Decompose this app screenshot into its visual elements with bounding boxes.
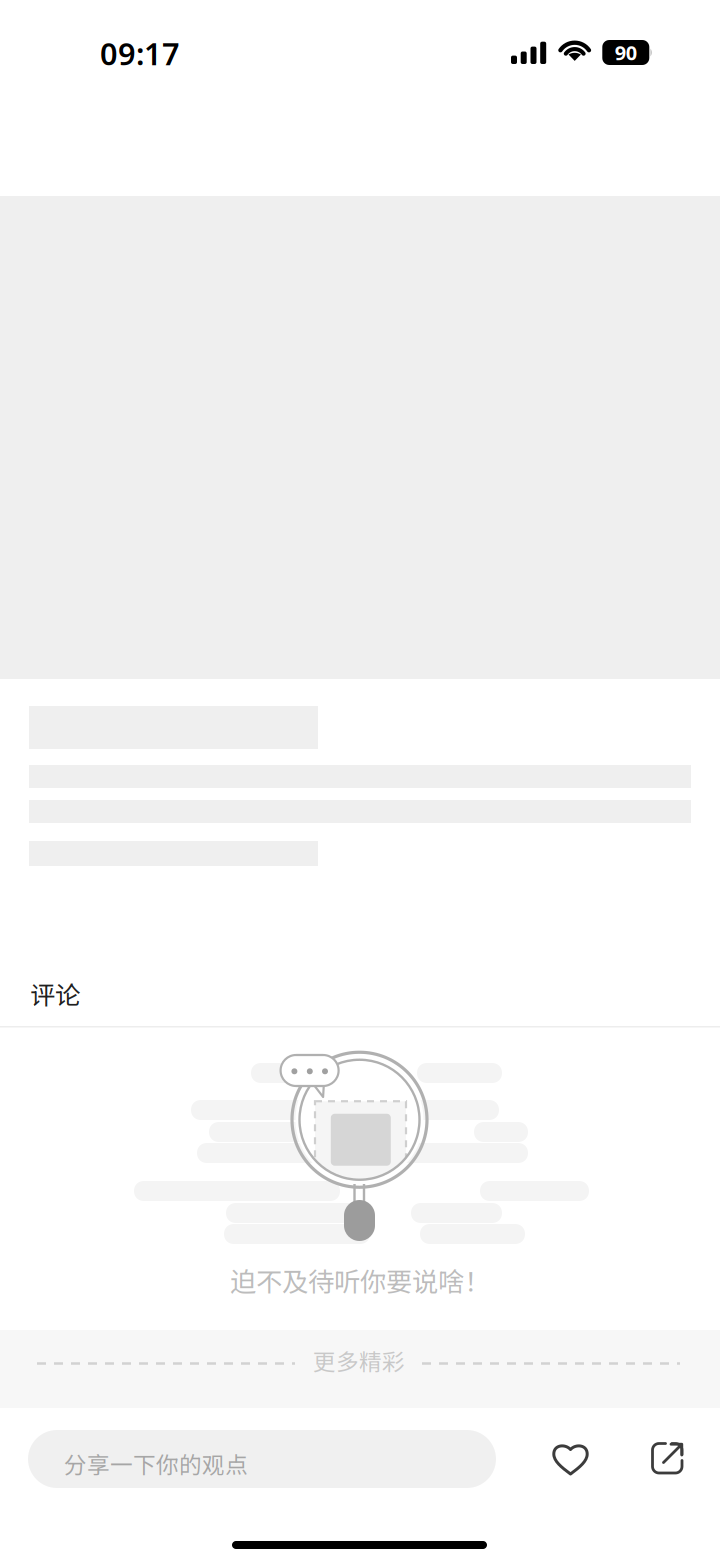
button[interactable]: 分享一下你的观点 (28, 1430, 496, 1488)
button[interactable]: Share (640, 1430, 696, 1488)
staticText: 更多精彩 (313, 1344, 405, 1377)
staticText: 90 (615, 39, 637, 66)
staticText: 分享一下你的观点 (64, 1447, 248, 1480)
button[interactable]: Like (540, 1430, 600, 1488)
staticText: 评论 (30, 975, 80, 1012)
staticText: 09:17 (100, 33, 180, 74)
staticText: 迫不及待听你要说啥！ (230, 1261, 490, 1299)
